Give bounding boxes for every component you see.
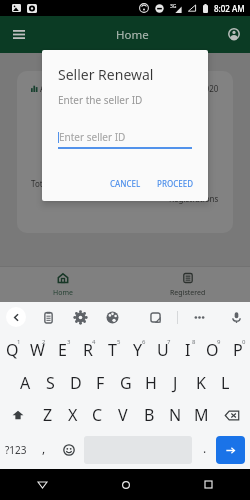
button[interactable]: Shift	[0, 399, 35, 431]
button[interactable]: Stickers	[144, 306, 166, 328]
staticText: 1	[17, 338, 21, 346]
staticText: 4	[92, 338, 96, 346]
staticText: T	[108, 339, 117, 361]
button[interactable]: Emoji	[56, 436, 82, 464]
staticText: Z	[43, 404, 53, 426]
button[interactable]: Z	[35, 399, 60, 431]
button[interactable]: PROCEED	[152, 175, 199, 192]
staticText: V	[118, 404, 128, 426]
staticText: 6	[142, 338, 146, 346]
button[interactable]: D	[63, 367, 88, 399]
button[interactable]: J	[163, 367, 188, 399]
staticText: 8	[192, 338, 196, 346]
staticText: Registered	[170, 288, 206, 298]
staticText: Enter seller ID	[59, 130, 126, 144]
staticText: Home	[116, 27, 149, 43]
button[interactable]: .	[194, 436, 216, 464]
button[interactable]: R	[75, 334, 100, 367]
button[interactable]: Backspace	[214, 399, 250, 431]
button[interactable]: Enter	[216, 436, 245, 464]
staticText: N	[169, 404, 182, 426]
button[interactable]: W	[25, 334, 50, 367]
button[interactable]: Back	[6, 307, 26, 327]
staticText: 3	[67, 338, 71, 346]
staticText: 2020	[200, 83, 219, 94]
button[interactable]: U	[150, 334, 175, 367]
staticText: J	[173, 372, 178, 394]
button[interactable]: Account	[221, 21, 247, 47]
staticText: 7	[167, 338, 171, 346]
button[interactable]: Y	[125, 334, 150, 367]
button[interactable]: X	[60, 399, 85, 431]
button[interactable]: K	[188, 367, 213, 399]
button[interactable]: M	[188, 399, 214, 431]
staticText: R	[83, 339, 93, 361]
button[interactable]: Themes	[101, 306, 123, 328]
button[interactable]: A	[12, 367, 38, 399]
staticText: .	[203, 440, 207, 456]
button[interactable]: G	[113, 367, 138, 399]
staticText: B	[144, 404, 155, 426]
staticText: Q	[6, 339, 19, 361]
button[interactable]: Q	[0, 334, 25, 367]
staticText: O	[206, 339, 219, 361]
button[interactable]: S	[38, 367, 63, 399]
button[interactable]: I	[175, 334, 200, 367]
button[interactable]: B	[136, 399, 162, 431]
button[interactable]: Clipboard	[37, 306, 59, 328]
staticText: F	[96, 372, 105, 394]
button[interactable]: V	[110, 399, 136, 431]
button[interactable]: CANCEL	[105, 175, 146, 192]
staticText: U	[157, 339, 169, 361]
staticText: Home	[53, 288, 73, 298]
staticText: Total	[31, 178, 50, 189]
staticText: K	[196, 372, 206, 394]
button[interactable]: E	[50, 334, 75, 367]
staticText: G	[120, 372, 132, 394]
staticText: M	[194, 404, 209, 426]
button[interactable]: Back	[0, 469, 84, 500]
staticText: Enter the seller ID	[58, 93, 143, 107]
staticText: 9	[217, 338, 221, 346]
button[interactable]: L	[213, 367, 238, 399]
staticText: Y	[133, 339, 143, 361]
staticText: L	[221, 372, 230, 394]
staticText: Analytics	[40, 83, 74, 94]
button[interactable]: Settings	[69, 306, 91, 328]
button[interactable]: More options	[188, 306, 210, 328]
staticText: H	[145, 372, 157, 394]
staticText: A	[20, 372, 31, 394]
staticText: E	[58, 339, 67, 361]
button[interactable]: N	[162, 399, 188, 431]
button[interactable]: Home	[84, 469, 167, 500]
staticText: PROCEED	[157, 178, 194, 189]
button[interactable]: Voice input	[225, 306, 247, 328]
staticText: 2	[42, 338, 46, 346]
button[interactable]: F	[88, 367, 113, 399]
button[interactable]: Home	[0, 266, 125, 302]
button[interactable]: Menu	[6, 21, 32, 47]
button[interactable]: T	[100, 334, 125, 367]
staticText: 5	[117, 338, 121, 346]
staticText: 8:02 AM	[214, 3, 245, 14]
staticText: W	[30, 339, 45, 361]
button[interactable]: H	[138, 367, 163, 399]
button[interactable]: Registered	[125, 266, 250, 302]
staticText: I	[185, 339, 191, 361]
staticText: 0	[242, 338, 246, 346]
staticText: 3G	[170, 3, 177, 10]
button[interactable]: ,	[32, 436, 56, 464]
staticText: S	[46, 372, 55, 394]
staticText: Registrations	[169, 193, 219, 204]
button[interactable]: P	[225, 334, 250, 367]
staticText: X	[68, 404, 78, 426]
staticText: ?123	[5, 443, 27, 457]
staticText: Seller Renewal	[58, 65, 154, 84]
staticText: ,	[42, 440, 46, 456]
button[interactable]: C	[85, 399, 110, 431]
button[interactable]: O	[200, 334, 225, 367]
button[interactable]: ?123	[0, 436, 32, 464]
staticText: C	[92, 404, 103, 426]
button[interactable]: Recents	[167, 469, 250, 500]
